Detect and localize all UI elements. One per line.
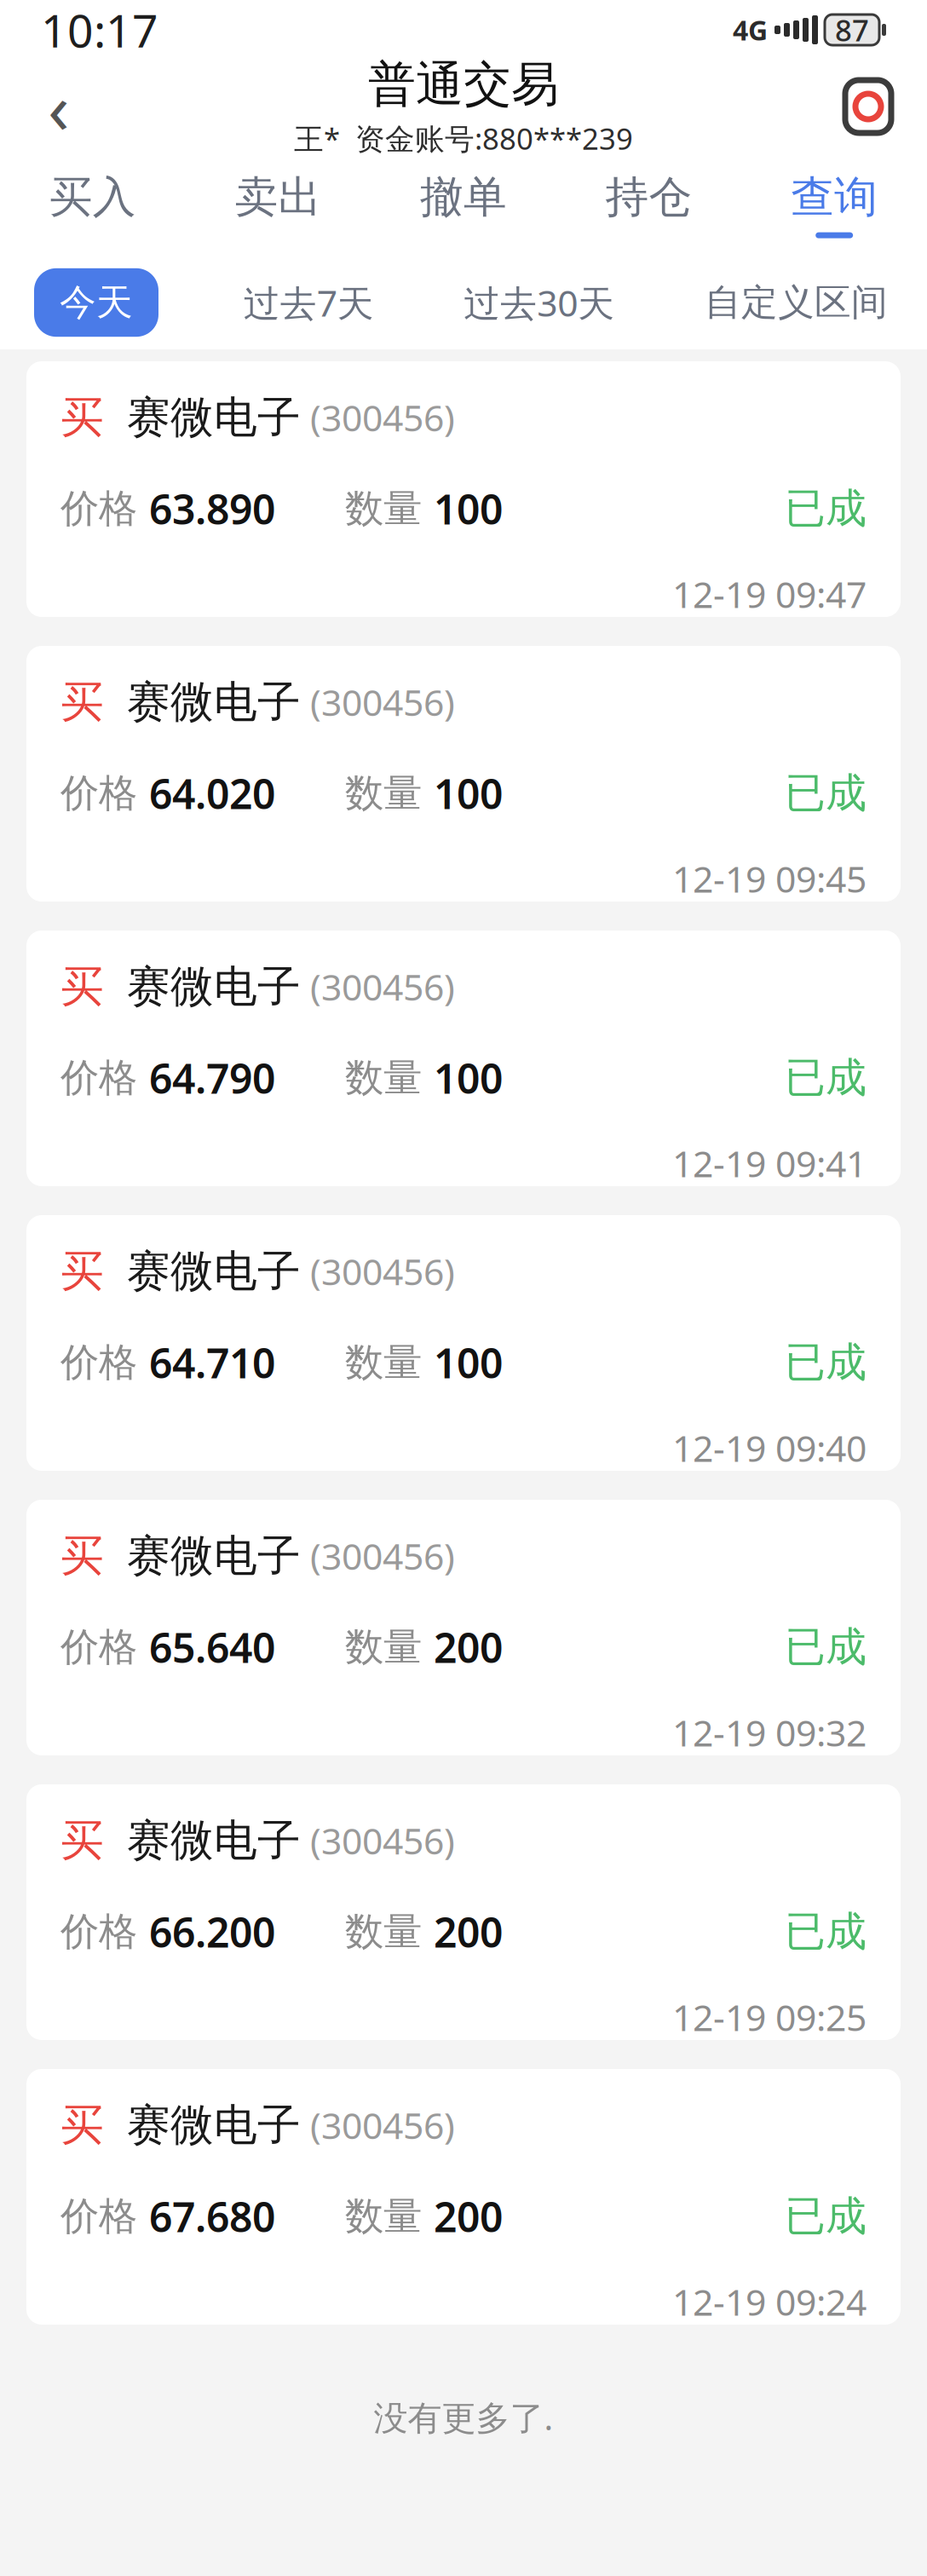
staticText: 撤单 bbox=[420, 171, 507, 224]
staticText: 64.790 bbox=[149, 1051, 275, 1105]
button[interactable]: 今天 bbox=[34, 268, 158, 337]
staticText: 64.710 bbox=[149, 1335, 275, 1389]
staticText: 63.890 bbox=[149, 481, 275, 536]
staticText: 已成 bbox=[785, 2191, 867, 2241]
staticText: 价格 bbox=[60, 2192, 149, 2240]
button[interactable]: 买 bbox=[26, 646, 901, 902]
staticText: 12-19 09:40 bbox=[672, 1424, 867, 1472]
staticText: 过去7天 bbox=[243, 278, 374, 327]
staticText: 买 bbox=[60, 960, 104, 1013]
button[interactable]: 买 bbox=[26, 1215, 901, 1471]
staticText: 买 bbox=[60, 2099, 104, 2152]
staticText: 今天 bbox=[60, 280, 133, 325]
staticText: (300456) bbox=[301, 1247, 455, 1295]
staticText: (300456) bbox=[301, 393, 455, 442]
button[interactable]: 买 bbox=[26, 361, 901, 617]
button[interactable]: 持仓 bbox=[556, 153, 742, 256]
staticText: 查询 bbox=[791, 171, 878, 224]
button[interactable]: 过去30天 bbox=[459, 266, 620, 339]
staticText: 10:17 bbox=[41, 0, 158, 60]
staticText: 100 bbox=[434, 1051, 503, 1105]
staticText: (300456) bbox=[301, 678, 455, 726]
staticText: 已成 bbox=[785, 768, 867, 818]
staticText: 已成 bbox=[785, 1906, 867, 1957]
staticText: 12-19 09:45 bbox=[672, 854, 867, 903]
staticText: 赛微电子 bbox=[127, 960, 301, 1013]
staticText: 100 bbox=[434, 1335, 503, 1389]
staticText: 买 bbox=[60, 391, 104, 444]
staticText: 4G bbox=[733, 12, 768, 48]
button[interactable]: 买入 bbox=[0, 153, 185, 256]
staticText: (300456) bbox=[301, 1816, 455, 1865]
staticText: 12-19 09:24 bbox=[672, 2277, 867, 2326]
staticText: 200 bbox=[434, 2189, 503, 2243]
staticText: 已成 bbox=[785, 1337, 867, 1388]
staticText: 数量 bbox=[345, 1908, 434, 1955]
button[interactable]: 买 bbox=[26, 1784, 901, 2040]
staticText: 12-19 09:25 bbox=[672, 1993, 867, 2041]
button[interactable]: 买 bbox=[26, 1500, 901, 1755]
button[interactable]: 撤单 bbox=[371, 153, 556, 256]
staticText: 价格 bbox=[60, 1623, 149, 1671]
staticText: 64.020 bbox=[149, 766, 275, 820]
staticText: 卖出 bbox=[235, 171, 322, 224]
staticText: 12-19 09:47 bbox=[672, 570, 867, 618]
staticText: 87 bbox=[835, 10, 869, 49]
staticText: 已成 bbox=[785, 483, 867, 534]
staticText: 67.680 bbox=[149, 2189, 275, 2243]
staticText: (300456) bbox=[301, 1532, 455, 1580]
staticText: 数量 bbox=[345, 769, 434, 817]
staticText: 没有更多了. bbox=[374, 2394, 553, 2440]
staticText: 200 bbox=[434, 1620, 503, 1674]
staticText: 200 bbox=[434, 1904, 503, 1959]
staticText: 赛微电子 bbox=[127, 1245, 301, 1298]
staticText: 66.200 bbox=[149, 1904, 275, 1959]
staticText: 已成 bbox=[785, 1622, 867, 1672]
staticText: 100 bbox=[434, 481, 503, 536]
staticText: 王* 资金账号:880***239 bbox=[294, 119, 633, 158]
staticText: 普通交易 bbox=[368, 55, 559, 114]
staticText: 12-19 09:41 bbox=[672, 1139, 867, 1187]
staticText: 赛微电子 bbox=[127, 1529, 301, 1582]
button[interactable]: 查询 bbox=[742, 153, 927, 256]
staticText: 价格 bbox=[60, 769, 149, 817]
button[interactable]: 买 bbox=[26, 931, 901, 1186]
staticText: 持仓 bbox=[605, 171, 692, 224]
staticText: 价格 bbox=[60, 1054, 149, 1101]
staticText: 价格 bbox=[60, 1339, 149, 1386]
staticText: 已成 bbox=[785, 1053, 867, 1103]
button[interactable]: 买 bbox=[26, 2069, 901, 2325]
staticText: 100 bbox=[434, 766, 503, 820]
staticText: 自定义区间 bbox=[705, 280, 888, 325]
staticText: 赛微电子 bbox=[127, 1814, 301, 1867]
staticText: 买 bbox=[60, 1814, 104, 1867]
staticText: 赛微电子 bbox=[127, 391, 301, 444]
staticText: 数量 bbox=[345, 2192, 434, 2240]
staticText: 数量 bbox=[345, 1339, 434, 1386]
staticText: 买 bbox=[60, 675, 104, 728]
button[interactable]: 返回 bbox=[12, 60, 106, 153]
staticText: 数量 bbox=[345, 1054, 434, 1101]
staticText: 买 bbox=[60, 1529, 104, 1582]
staticText: 价格 bbox=[60, 1908, 149, 1955]
staticText: ‹ bbox=[48, 60, 70, 153]
staticText: 12-19 09:32 bbox=[672, 1708, 867, 1757]
staticText: 买 bbox=[60, 1245, 104, 1298]
staticText: 价格 bbox=[60, 485, 149, 532]
button[interactable]: 卖出 bbox=[185, 153, 371, 256]
staticText: 赛微电子 bbox=[127, 2099, 301, 2152]
staticText: 65.640 bbox=[149, 1620, 275, 1674]
button[interactable]: 交易设置 bbox=[821, 60, 915, 153]
staticText: (300456) bbox=[301, 2101, 455, 2149]
staticText: (300456) bbox=[301, 962, 455, 1011]
button[interactable]: 自定义区间 bbox=[700, 268, 893, 337]
staticText: 赛微电子 bbox=[127, 675, 301, 728]
staticText: 数量 bbox=[345, 485, 434, 532]
staticText: 数量 bbox=[345, 1623, 434, 1671]
staticText: 过去30天 bbox=[464, 278, 615, 327]
button[interactable]: 过去7天 bbox=[238, 266, 379, 339]
staticText: 买入 bbox=[49, 171, 136, 224]
